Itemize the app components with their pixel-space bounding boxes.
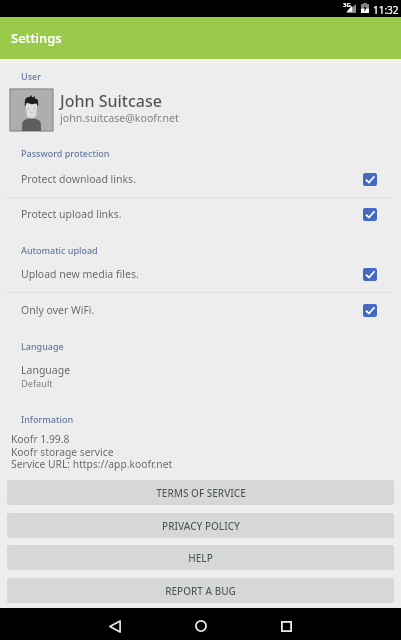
button[interactable]: HELP <box>7 545 394 570</box>
staticText: Language <box>21 363 71 377</box>
staticText: User <box>21 70 41 82</box>
button[interactable]: REPORT A BUG <box>7 578 394 603</box>
staticText: Settings <box>11 29 62 47</box>
staticText: John Suitcase <box>60 90 162 112</box>
button[interactable]: TERMS OF SERVICE <box>7 480 394 505</box>
button[interactable]: Protect download links. <box>0 162 401 196</box>
staticText: REPORT A BUG <box>165 584 236 598</box>
staticText: 11:32 <box>373 3 399 17</box>
button[interactable]: Upload new media files. <box>0 257 401 291</box>
button[interactable]: Back <box>93 608 137 640</box>
button[interactable]: Language <box>0 360 401 394</box>
staticText: Koofr 1.99.8 Koofr storage service Servi… <box>11 432 173 471</box>
staticText: Language <box>21 340 64 352</box>
button[interactable]: John Suitcase <box>0 84 401 132</box>
staticText: PRIVACY POLICY <box>162 519 240 533</box>
staticText: HELP <box>188 551 213 565</box>
staticText: Information <box>21 413 74 425</box>
staticText: Protect download links. <box>21 172 363 186</box>
staticText: Upload new media files. <box>21 267 363 281</box>
button[interactable]: Only over WiFi. <box>0 293 401 327</box>
button[interactable]: Protect upload links. <box>0 197 401 231</box>
staticText: TERMS OF SERVICE <box>156 486 246 500</box>
staticText: Automatic upload <box>21 244 98 256</box>
button[interactable]: Home <box>179 608 223 640</box>
staticText: Only over WiFi. <box>21 303 363 317</box>
button[interactable]: Recent apps <box>264 608 308 640</box>
staticText: john.suitcase@koofr.net <box>60 111 179 125</box>
staticText: Protect upload links. <box>21 207 363 221</box>
staticText: Default <box>21 377 53 390</box>
staticText: 3G <box>343 1 351 9</box>
button[interactable]: PRIVACY POLICY <box>7 513 394 538</box>
staticText: Password protection <box>21 147 110 159</box>
